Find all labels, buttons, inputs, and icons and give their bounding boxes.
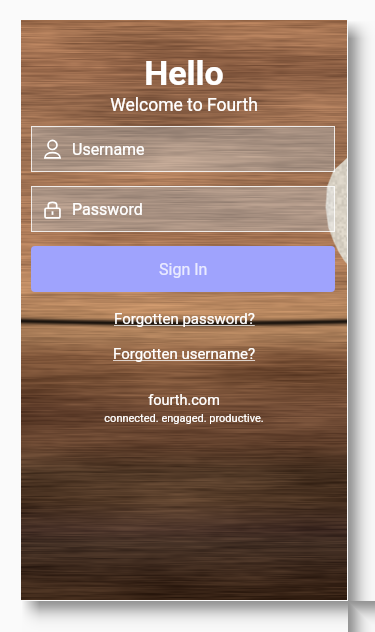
staticText: fourth.com <box>21 392 347 409</box>
button[interactable]: User <box>31 126 335 172</box>
button[interactable]: Password <box>31 186 335 232</box>
other: Password <box>42 199 63 220</box>
staticText: Hello <box>21 53 347 93</box>
staticText: Password <box>72 200 143 219</box>
staticText: Forgotten username? <box>113 345 256 363</box>
button[interactable]: Forgotten username? <box>21 345 347 367</box>
staticText: Forgotten password? <box>114 310 255 328</box>
staticText: Username <box>72 140 145 159</box>
button[interactable]: Sign In <box>31 246 335 292</box>
staticText: connected. engaged. productive. <box>21 412 347 425</box>
staticText: Sign In <box>159 260 208 279</box>
staticText: Welcome to Fourth <box>21 95 347 116</box>
button[interactable]: Forgotten password? <box>21 310 347 332</box>
other: User <box>42 139 63 160</box>
